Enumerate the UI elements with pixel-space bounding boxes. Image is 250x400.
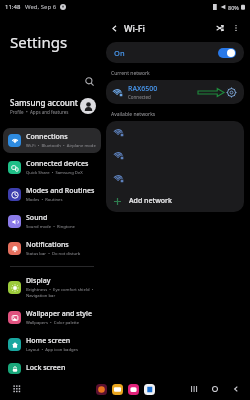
button[interactable]: Connections [3,128,101,153]
button[interactable]: Back [106,20,122,36]
staticText: Wi-Fi • Bluetooth • Airplane mode [26,143,96,149]
staticText: Layout • App icon badges [26,347,78,353]
button[interactable]: App [96,384,107,395]
button[interactable]: App [128,384,139,395]
staticText: Connected devices [26,159,89,169]
button[interactable]: Notifications [3,236,101,261]
staticText: Home screen [26,336,71,346]
staticText: Quick Share • Samsung DeX [26,170,83,176]
staticText: Brightness • Eye comfort shield • Naviga… [26,287,96,299]
button[interactable]: Wallpaper and style [3,305,101,330]
button[interactable]: Wi-Fi network [106,144,244,167]
button[interactable]: Wi-Fi network [106,167,244,190]
staticText: Modes and Routines [26,186,95,196]
button[interactable]: Display [3,272,101,303]
staticText: Sound [26,213,48,223]
button[interactable]: RAX6500 [106,80,244,104]
staticText: Wallpaper and style [26,309,92,319]
button[interactable]: On [106,42,244,63]
staticText: RAX6500 [128,84,158,94]
button[interactable]: Home screen [3,332,101,357]
staticText: Profile • Apps and features [10,109,69,115]
button[interactable]: Wi-Fi network [106,121,244,144]
staticText: 11:48 [5,3,21,11]
button[interactable]: Recents [188,383,200,395]
staticText: Current network [111,70,150,77]
button[interactable]: Samsung account [10,92,96,120]
staticText: Available networks [111,111,156,118]
staticText: Samsung account [10,97,78,108]
button[interactable]: Add network [106,190,244,212]
button[interactable]: More options [228,20,244,36]
button[interactable]: Wi-Fi Direct [212,20,228,36]
staticText: Wed, Sep 6 [25,3,57,11]
staticText: Wi-Fi [124,22,145,34]
staticText: Status bar • Do not disturb [26,251,81,257]
button[interactable]: Network settings [225,86,238,99]
staticText: Add network [129,196,172,206]
staticText: Wallpapers • Color palette [26,320,80,326]
button[interactable]: Back [230,383,242,395]
button[interactable]: Search settings [82,74,96,88]
staticText: Settings [10,32,68,52]
staticText: Display [26,276,51,286]
button[interactable]: App [144,384,155,395]
staticText: Notifications [26,240,69,250]
button[interactable]: App [112,384,123,395]
staticText: 80% [228,4,239,11]
button[interactable]: Home [209,383,221,395]
button[interactable]: Apps [10,382,24,396]
button[interactable]: Connected devices [3,155,101,180]
staticText: Modes • Routines [26,197,63,203]
button[interactable]: Sound [3,209,101,234]
staticText: Connected [128,94,151,100]
staticText: Sound mode • Ringtone [26,224,75,230]
button[interactable]: Modes and Routines [3,182,101,207]
staticText: Connections [26,132,68,142]
button[interactable]: Lock screen [3,359,101,378]
staticText: Lock screen [26,363,66,373]
staticText: On [114,48,125,58]
